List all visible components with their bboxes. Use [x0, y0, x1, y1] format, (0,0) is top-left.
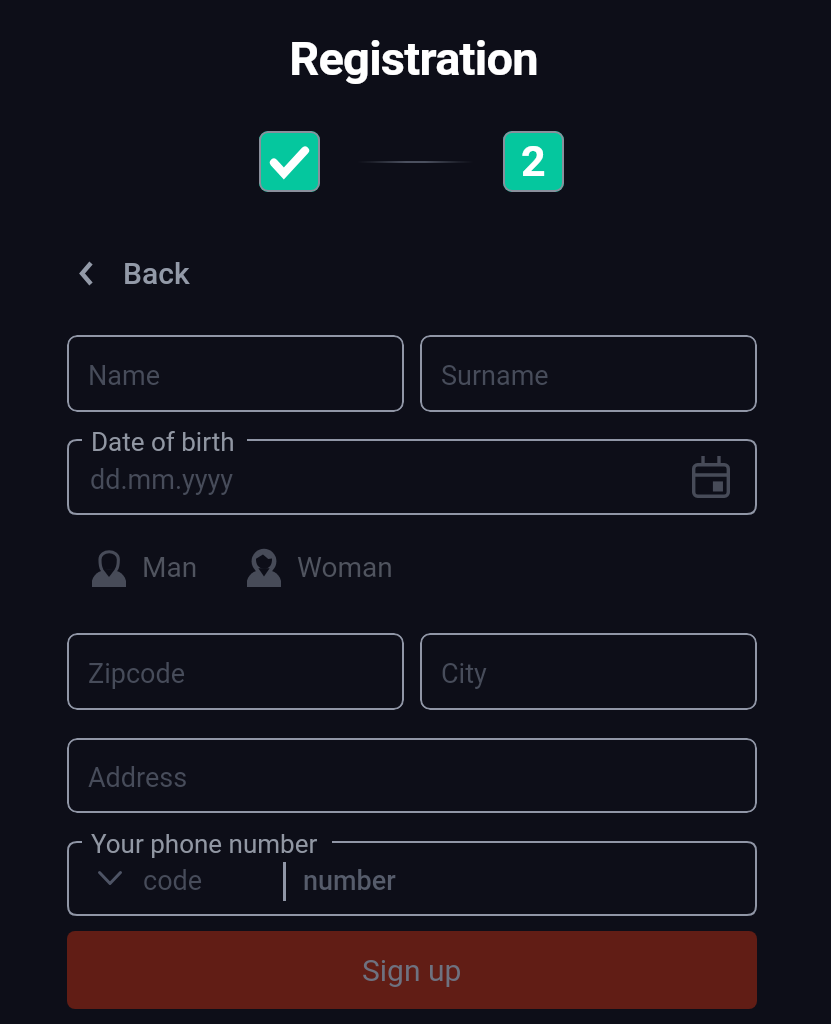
button[interactable]: Sign up	[67, 931, 757, 1009]
staticText: dd.mm.yyyy	[90, 464, 234, 496]
staticText: Man	[142, 551, 198, 584]
staticText: Zipcode	[88, 658, 185, 690]
button[interactable]: Surname	[420, 335, 757, 412]
button[interactable]: Man	[87, 543, 203, 591]
button[interactable]: Back	[62, 248, 204, 298]
button[interactable]: Address	[67, 738, 757, 813]
button[interactable]: Step 2	[503, 131, 564, 192]
staticText: Woman	[297, 551, 393, 584]
button[interactable]: Name	[67, 335, 404, 412]
button[interactable]: Step 1 complete	[259, 131, 320, 192]
button[interactable]: City	[420, 633, 757, 710]
staticText: Name	[88, 360, 160, 392]
button[interactable]: Pick date	[685, 451, 737, 503]
staticText: Date of birth	[91, 427, 235, 457]
button[interactable]: Zipcode	[67, 633, 404, 710]
staticText: Sign up	[362, 953, 462, 988]
staticText: number	[303, 865, 396, 897]
staticText: Address	[88, 762, 188, 794]
button[interactable]: Select country code	[73, 841, 147, 915]
staticText: Back	[123, 256, 190, 291]
staticText: 2	[521, 136, 546, 186]
button[interactable]: Woman	[242, 543, 398, 591]
staticText: City	[441, 658, 487, 690]
staticText: code	[143, 865, 203, 897]
staticText: Your phone number	[91, 829, 318, 859]
staticText: Surname	[441, 360, 549, 392]
staticText: Registration	[0, 31, 829, 86]
